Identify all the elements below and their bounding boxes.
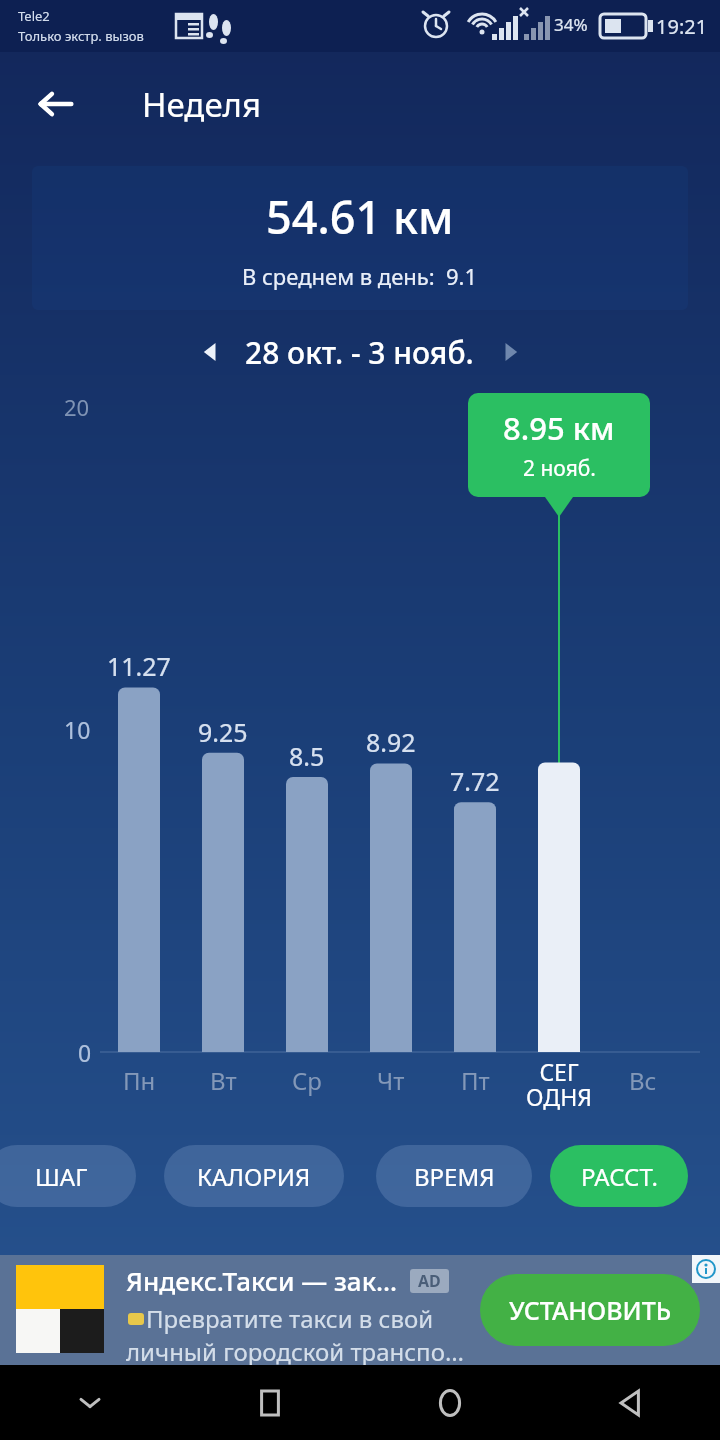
staticText: 8.5 <box>289 739 325 773</box>
button[interactable]: Back <box>540 1365 720 1440</box>
button[interactable]: Hide keyboard <box>0 1365 180 1440</box>
staticText: 2 нояб. <box>523 454 596 483</box>
staticText: Пн <box>123 1064 156 1097</box>
button[interactable]: КАЛОРИЯ <box>164 1145 344 1207</box>
staticText: 10 <box>64 714 91 745</box>
button[interactable]: Яндекс.Такси — зак… <box>0 1255 720 1365</box>
staticText: Только экстр. вызов <box>18 27 144 45</box>
staticText: Вт <box>210 1064 237 1097</box>
staticText: 20 <box>64 392 90 422</box>
staticText: Вс <box>629 1064 657 1097</box>
button[interactable]: Recent apps <box>180 1365 360 1440</box>
staticText: 28 окт. - 3 нояб. <box>245 332 474 373</box>
staticText: Неделя <box>142 82 261 127</box>
button[interactable]: РАССТ. <box>550 1145 688 1207</box>
button[interactable]: Back <box>24 72 88 136</box>
staticText: СЕГ ОДНЯ <box>526 1056 592 1113</box>
button[interactable]: Next week <box>488 330 532 374</box>
button[interactable]: 54.61 км <box>32 166 688 310</box>
staticText: РАССТ. <box>581 1160 658 1193</box>
staticText: 19:21 <box>656 13 708 40</box>
button[interactable]: ВРЕМЯ <box>376 1145 532 1207</box>
staticText: Пт <box>461 1064 490 1097</box>
button[interactable]: ШАГ <box>0 1145 136 1207</box>
staticText: AD <box>418 1270 441 1292</box>
staticText: 8.92 <box>366 725 416 759</box>
staticText: Яндекс.Такси — зак… <box>126 1263 398 1298</box>
staticText: 34% <box>554 13 588 36</box>
staticText: 11.27 <box>107 649 171 683</box>
staticText: 7.72 <box>450 764 500 798</box>
button[interactable]: УСТАНОВИТЬ <box>480 1274 700 1346</box>
button[interactable]: Previous week <box>189 330 233 374</box>
staticText: КАЛОРИЯ <box>197 1160 311 1193</box>
staticText: 54.61 км <box>266 186 454 247</box>
staticText: УСТАНОВИТЬ <box>509 1293 672 1327</box>
staticText: Ср <box>292 1064 322 1097</box>
staticText: Чт <box>377 1064 405 1097</box>
staticText: В среднем в день: 9.1 <box>242 261 478 291</box>
button[interactable]: 8.95 км <box>468 393 650 497</box>
staticText: 0 <box>78 1037 92 1068</box>
staticText: ШАГ <box>35 1160 88 1193</box>
staticText: 9.25 <box>198 715 248 749</box>
staticText: Превратите такси в свой <box>146 1302 434 1335</box>
staticText: ВРЕМЯ <box>414 1160 495 1193</box>
button[interactable]: Home <box>360 1365 540 1440</box>
staticText: 8.95 км <box>503 407 615 449</box>
button[interactable]: Ad info <box>692 1255 720 1283</box>
staticText: Tele2 <box>18 7 50 25</box>
staticText: личный городской транспо… <box>126 1335 464 1368</box>
